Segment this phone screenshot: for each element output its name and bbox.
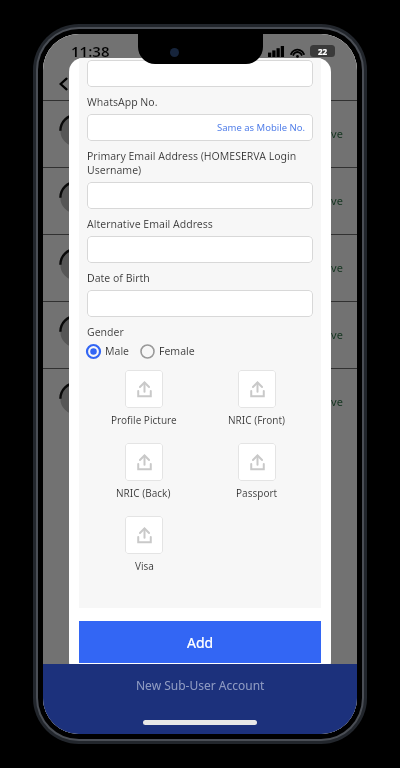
staticText: WhatsApp No. bbox=[87, 95, 313, 109]
staticText: Same as Mobile No. bbox=[217, 121, 306, 134]
staticText: Add bbox=[187, 633, 214, 652]
button[interactable]: Upload NRIC (Front) bbox=[238, 370, 276, 408]
button[interactable]: Female bbox=[141, 344, 195, 358]
button[interactable]: Upload Visa bbox=[125, 516, 163, 554]
button[interactable]: Male bbox=[87, 344, 130, 358]
staticText: Date of Birth bbox=[87, 271, 313, 285]
staticText: Profile Picture bbox=[111, 413, 177, 427]
button[interactable]: Active bbox=[43, 301, 357, 368]
staticText: New Sub-User Account bbox=[136, 677, 265, 693]
button[interactable]: Same as Mobile No. bbox=[87, 114, 313, 141]
button[interactable]: Upload Passport bbox=[238, 443, 276, 481]
staticText: NRIC (Front) bbox=[228, 413, 286, 427]
button[interactable] bbox=[87, 60, 313, 87]
staticText: Active bbox=[312, 126, 343, 141]
button[interactable]: Upload Profile Picture bbox=[125, 370, 163, 408]
staticText: 22 bbox=[318, 46, 328, 57]
button[interactable]: Upload NRIC (Back) bbox=[125, 443, 163, 481]
button[interactable]: Same as Mobile No. bbox=[217, 121, 306, 134]
button[interactable]: Add bbox=[79, 621, 321, 663]
button[interactable] bbox=[87, 290, 313, 317]
button[interactable]: Active bbox=[43, 100, 357, 167]
staticText: Active bbox=[312, 394, 343, 409]
staticText: 11:38 bbox=[71, 41, 110, 61]
staticText: Visa bbox=[135, 559, 154, 573]
staticText: Passport bbox=[236, 486, 278, 500]
staticText: Alternative Email Address bbox=[87, 217, 313, 231]
staticText: Active bbox=[312, 260, 343, 275]
staticText: Female bbox=[159, 344, 195, 358]
button[interactable] bbox=[87, 182, 313, 209]
staticText: Gender bbox=[87, 325, 313, 339]
staticText: Primary Email Address (HOMESERVA Login U… bbox=[87, 149, 313, 177]
staticText: Male bbox=[105, 344, 130, 358]
staticText: NRIC (Back) bbox=[116, 486, 171, 500]
button[interactable]: Active bbox=[43, 167, 357, 234]
button[interactable]: Active bbox=[43, 368, 357, 435]
staticText: Active bbox=[312, 327, 343, 342]
staticText: Active bbox=[312, 193, 343, 208]
button[interactable]: Active bbox=[43, 234, 357, 301]
button[interactable] bbox=[87, 236, 313, 263]
